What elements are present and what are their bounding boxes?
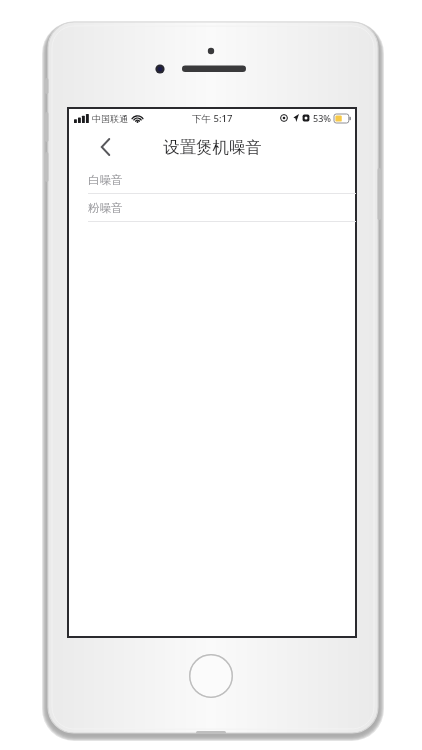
button[interactable]: 粉噪音	[68, 194, 356, 222]
button[interactable]: 白噪音	[68, 166, 356, 194]
staticText: 白噪音	[88, 173, 123, 187]
staticText: 设置煲机噪音	[163, 137, 262, 158]
staticText: 53%	[313, 112, 331, 124]
staticText: 下午 5:17	[192, 112, 233, 125]
staticText: 中国联通	[92, 113, 128, 124]
button[interactable]: 返回	[92, 134, 118, 160]
staticText: 粉噪音	[88, 201, 123, 215]
